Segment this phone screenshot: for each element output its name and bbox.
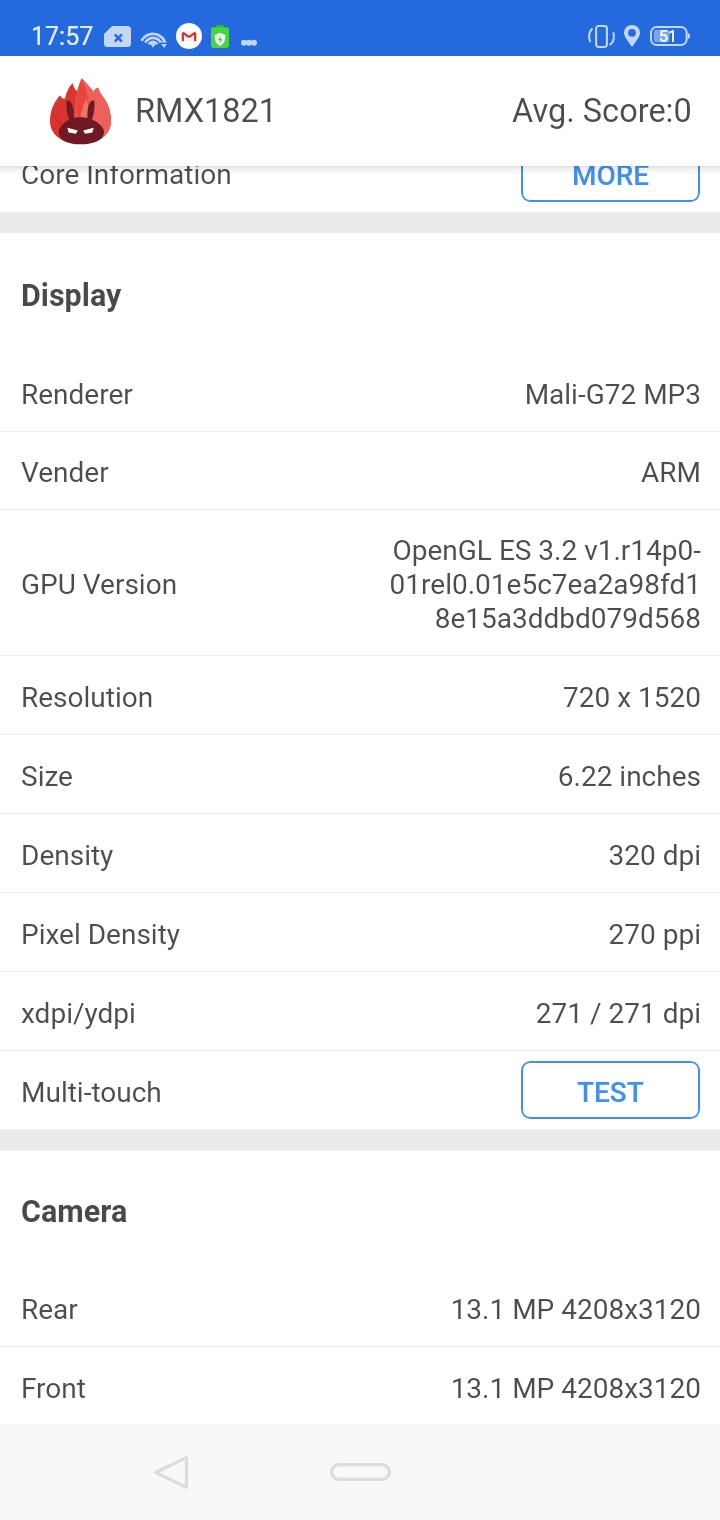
button[interactable]: GPU Version	[0, 510, 720, 656]
staticText: Renderer	[21, 378, 133, 411]
staticText: Pixel Density	[21, 918, 181, 951]
staticText: 51	[659, 27, 678, 46]
staticText: GPU Version	[21, 568, 178, 601]
button[interactable]: xdpi/ydpi	[0, 972, 720, 1051]
staticText: 6.22 inches	[557, 760, 701, 793]
button[interactable]: Front	[0, 1347, 720, 1424]
staticText: Display	[21, 278, 122, 314]
staticText: Vender	[21, 456, 109, 489]
staticText: MORE	[572, 159, 650, 192]
button[interactable]: Resolution	[0, 656, 720, 735]
staticText: Front	[21, 1372, 86, 1405]
staticText: Resolution	[21, 681, 154, 714]
staticText: Rear	[21, 1293, 78, 1326]
button[interactable]: Pixel Density	[0, 893, 720, 972]
button[interactable]: TEST	[521, 1061, 700, 1119]
staticText: 17:57	[31, 22, 94, 51]
button[interactable]: Back	[108, 1424, 234, 1520]
staticText: TEST	[577, 1076, 644, 1109]
staticText: ARM	[641, 456, 701, 489]
button[interactable]: Density	[0, 814, 720, 893]
staticText: RMX1821	[135, 92, 278, 130]
staticText: 720 x 1520	[563, 681, 701, 714]
staticText: 320 dpi	[608, 839, 701, 872]
button[interactable]: Home	[297, 1424, 423, 1520]
staticText: xdpi/ydpi	[21, 997, 136, 1030]
staticText: Camera	[21, 1194, 128, 1230]
staticText: Mali-G72 MP3	[524, 378, 701, 411]
button[interactable]: MORE	[521, 144, 700, 202]
button[interactable]: Vender	[0, 432, 720, 510]
button[interactable]: Renderer	[0, 354, 720, 432]
button[interactable]: Size	[0, 735, 720, 814]
staticText: Core Information	[21, 158, 232, 191]
button[interactable]: Rear	[0, 1268, 720, 1347]
staticText: Size	[21, 760, 73, 793]
staticText: 13.1 MP 4208x3120	[450, 1372, 701, 1405]
staticText: 271 / 271 dpi	[535, 997, 701, 1030]
staticText: 13.1 MP 4208x3120	[450, 1293, 701, 1326]
staticText: OpenGL ES 3.2 v1.r14p0-01rel0.01e5c7ea2a…	[385, 534, 701, 635]
staticText: Density	[21, 839, 114, 872]
staticText: 270 ppi	[608, 918, 701, 951]
staticText: Multi-touch	[21, 1076, 162, 1109]
staticText: Avg. Score:0	[512, 92, 692, 130]
